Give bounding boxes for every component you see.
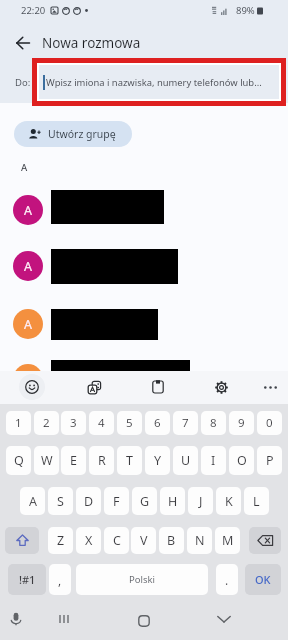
staticText: !#1	[19, 572, 36, 587]
button[interactable]: M	[215, 527, 240, 554]
button[interactable]: !#1	[8, 564, 46, 595]
staticText: 7	[182, 415, 189, 431]
staticText: 2	[43, 415, 50, 431]
button[interactable]: K	[216, 487, 241, 515]
button[interactable]	[0, 301, 288, 347]
button[interactable]: C	[104, 527, 129, 554]
button[interactable]: 6	[145, 411, 170, 435]
staticText: E	[70, 452, 77, 469]
button[interactable]: R	[89, 446, 114, 475]
button[interactable]: Q	[6, 446, 31, 475]
button[interactable]: I	[201, 446, 226, 475]
button[interactable]: Home	[132, 609, 156, 633]
button[interactable]: 9	[229, 411, 254, 435]
staticText: Nowa rozmowa	[42, 34, 141, 52]
button[interactable]: OK	[245, 564, 281, 595]
button[interactable]: Recent apps	[52, 607, 76, 631]
button[interactable]: Wpisz imiona i nazwiska, numery telefonó…	[39, 65, 279, 99]
staticText: R	[98, 452, 106, 469]
staticText: A	[24, 202, 32, 219]
button[interactable]: Hide keyboard	[212, 607, 236, 631]
button[interactable]: E	[61, 446, 86, 475]
button[interactable]: P	[257, 446, 282, 475]
staticText: W	[41, 452, 53, 469]
button[interactable]: Stickers	[81, 374, 107, 400]
button[interactable]: Z	[48, 527, 73, 554]
button[interactable]: More options	[257, 374, 283, 400]
staticText: U	[181, 452, 191, 469]
staticText: O	[237, 452, 247, 469]
staticText: V	[140, 532, 148, 549]
button[interactable]	[0, 243, 288, 289]
button[interactable]: U	[173, 446, 198, 475]
button[interactable]: Back	[7, 27, 38, 58]
staticText: L	[253, 493, 260, 510]
staticText: Do:	[15, 76, 31, 89]
button[interactable]: 5	[117, 411, 142, 435]
button[interactable]: Clipboard	[145, 374, 171, 400]
button[interactable]: Utwórz grupę	[14, 121, 132, 147]
button[interactable]: Y	[145, 446, 170, 475]
staticText: Utwórz grupę	[48, 127, 116, 141]
staticText: N	[195, 532, 205, 549]
button[interactable]	[0, 356, 288, 402]
staticText: Z	[57, 532, 65, 549]
staticText: H	[168, 493, 178, 510]
button[interactable]: Emoji	[19, 374, 45, 400]
staticText: .	[225, 572, 229, 588]
button[interactable]: 0	[257, 411, 282, 435]
staticText: 1	[15, 415, 22, 431]
button[interactable]: 1	[6, 411, 31, 435]
staticText: A	[21, 161, 28, 174]
button[interactable]: S	[48, 487, 73, 515]
button[interactable]: 7	[173, 411, 198, 435]
staticText: J	[199, 493, 203, 510]
button[interactable]: N	[187, 527, 212, 554]
staticText: A	[24, 316, 32, 333]
button[interactable]: H	[160, 487, 185, 515]
button[interactable]: ,	[49, 564, 71, 595]
staticText: 3	[70, 415, 77, 431]
staticText: Polski	[129, 573, 156, 586]
button[interactable]: F	[104, 487, 129, 515]
staticText: Y	[154, 452, 162, 469]
button[interactable]: B	[159, 527, 184, 554]
button[interactable]: G	[132, 487, 157, 515]
staticText: 5	[126, 415, 133, 431]
staticText: 8	[210, 415, 217, 431]
button[interactable]: J	[188, 487, 213, 515]
staticText: A	[24, 258, 32, 275]
button[interactable]: L	[244, 487, 269, 515]
staticText: K	[225, 493, 233, 510]
button[interactable]	[249, 527, 281, 554]
staticText: C	[113, 532, 121, 549]
button[interactable]: Polski	[76, 564, 208, 595]
button[interactable]: 4	[89, 411, 114, 435]
staticText: F	[113, 493, 120, 510]
button[interactable]	[5, 527, 39, 554]
button[interactable]: D	[76, 487, 101, 515]
staticText: G	[140, 493, 150, 510]
staticText: 89%	[236, 4, 255, 17]
button[interactable]: X	[76, 527, 101, 554]
button[interactable]: T	[117, 446, 142, 475]
staticText: T	[126, 452, 133, 469]
button[interactable]: 3	[61, 411, 86, 435]
button[interactable]: Settings	[208, 374, 234, 400]
button[interactable]: 2	[34, 411, 59, 435]
button[interactable]: Voice input	[4, 607, 28, 631]
button[interactable]: .	[216, 564, 238, 595]
staticText: 22:20	[21, 4, 46, 17]
staticText: 4	[98, 415, 105, 431]
button[interactable]: V	[131, 527, 156, 554]
staticText: ,	[58, 572, 62, 588]
staticText: X	[85, 532, 93, 549]
button[interactable]: W	[34, 446, 59, 475]
staticText: 6	[154, 415, 161, 431]
staticText: OK	[255, 572, 271, 587]
button[interactable]: 8	[201, 411, 226, 435]
button[interactable]: O	[229, 446, 254, 475]
button[interactable]: A	[20, 487, 45, 515]
staticText: P	[266, 452, 274, 469]
button[interactable]	[0, 187, 288, 233]
